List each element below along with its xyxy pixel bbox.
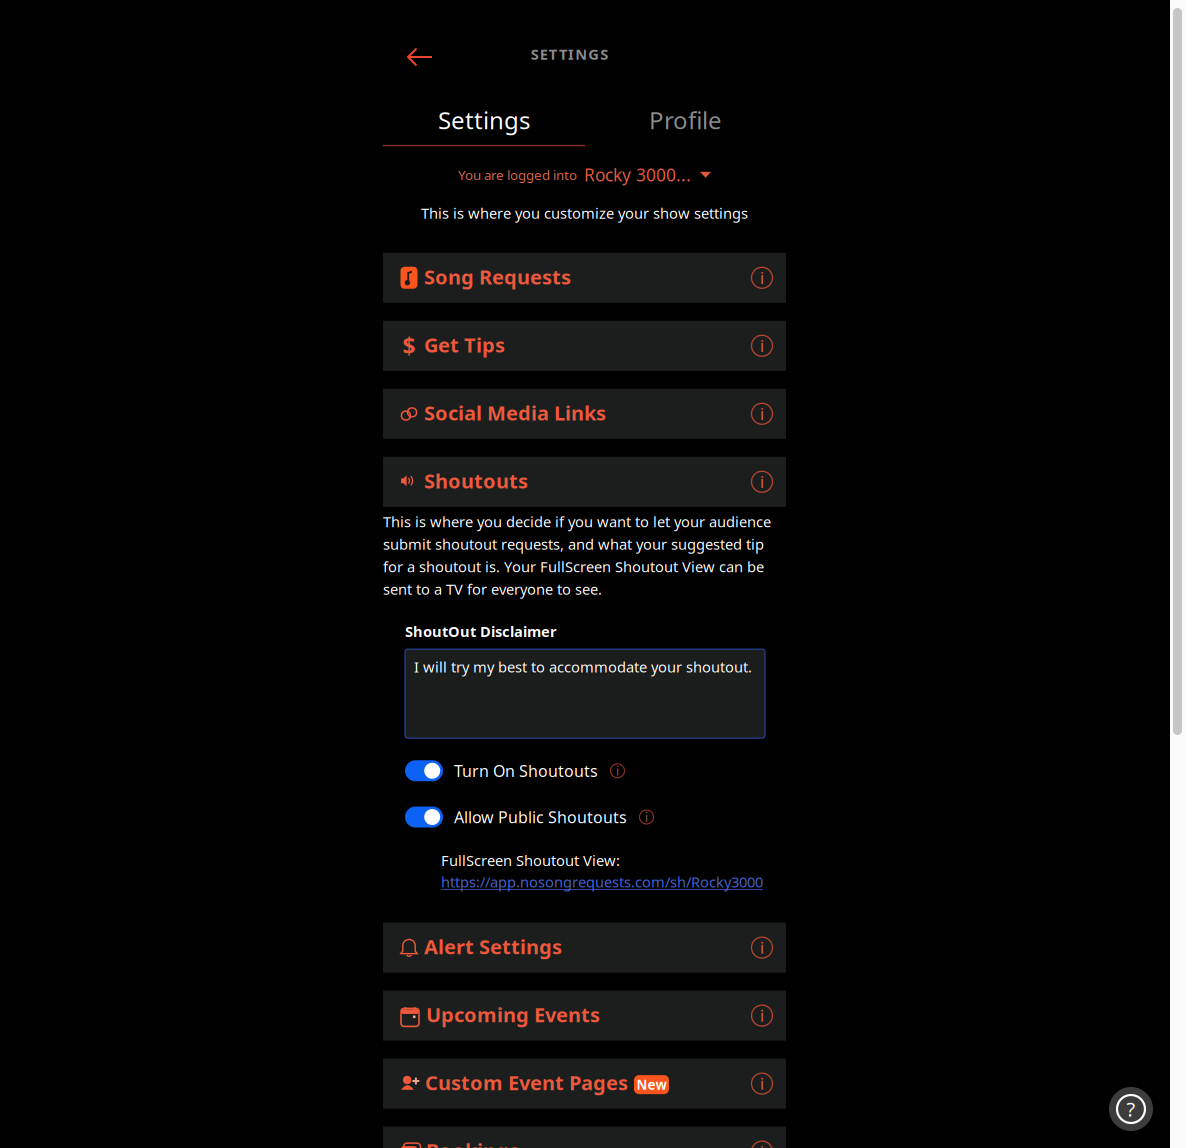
staticText: i bbox=[760, 1141, 764, 1148]
staticText: New bbox=[636, 1076, 666, 1093]
button[interactable]: Allow Public Shoutouts bbox=[405, 806, 443, 827]
staticText: Social Media Links bbox=[424, 399, 606, 426]
staticText: ShoutOut Disclaimer bbox=[405, 622, 557, 641]
staticText: i bbox=[760, 1005, 764, 1026]
staticText: Bookings bbox=[426, 1137, 519, 1148]
button[interactable]: Alert Settings bbox=[383, 923, 786, 973]
staticText: Upcoming Events bbox=[426, 1001, 600, 1028]
staticText: This is where you customize your show se… bbox=[421, 203, 748, 223]
staticText: i bbox=[760, 267, 764, 288]
staticText: Settings bbox=[438, 104, 530, 136]
button[interactable]: Song Requests bbox=[383, 253, 786, 303]
button[interactable]: Back bbox=[398, 38, 442, 76]
button[interactable]: Turn On Shoutouts bbox=[405, 760, 443, 781]
staticText: i bbox=[760, 471, 764, 492]
staticText: https://app.nosongrequests.com/sh/Rocky3… bbox=[441, 872, 763, 892]
staticText: You are logged into bbox=[458, 166, 577, 184]
staticText: Song Requests bbox=[424, 263, 571, 290]
staticText: i bbox=[760, 335, 764, 356]
staticText: i bbox=[645, 809, 648, 825]
staticText: Allow Public Shoutouts bbox=[454, 806, 627, 828]
staticText: FullScreen Shoutout View: bbox=[441, 851, 620, 870]
button[interactable]: Custom Event Pages bbox=[383, 1059, 786, 1109]
staticText: Alert Settings bbox=[424, 933, 562, 960]
button[interactable]: Rocky 3000... bbox=[577, 163, 711, 186]
staticText: ? bbox=[1126, 1096, 1135, 1122]
button[interactable]: Bookings bbox=[383, 1127, 786, 1148]
staticText: i bbox=[616, 763, 619, 779]
staticText: i bbox=[760, 937, 764, 958]
button[interactable]: Upcoming Events bbox=[383, 991, 786, 1041]
button[interactable]: Settings bbox=[383, 104, 585, 146]
staticText: Rocky 3000... bbox=[584, 163, 691, 186]
staticText: SETTINGS bbox=[531, 44, 608, 64]
staticText: I will try my best to accommodate your s… bbox=[414, 657, 752, 677]
button[interactable]: Social Media Links bbox=[383, 389, 786, 439]
staticText: Profile bbox=[649, 104, 722, 136]
staticText: Get Tips bbox=[424, 331, 505, 358]
button[interactable]: Help bbox=[1109, 1087, 1153, 1131]
staticText: i bbox=[760, 1073, 764, 1094]
button[interactable]: Profile bbox=[585, 104, 786, 146]
staticText: Shoutouts bbox=[424, 467, 528, 494]
staticText: This is where you decide if you want to … bbox=[383, 512, 771, 599]
staticText: $ bbox=[402, 331, 415, 361]
staticText: Custom Event Pages bbox=[425, 1069, 628, 1096]
button[interactable]: https://app.nosongrequests.com/sh/Rocky3… bbox=[441, 872, 786, 892]
button[interactable]: Shoutouts bbox=[383, 457, 786, 507]
staticText: i bbox=[760, 403, 764, 424]
button[interactable]: $ bbox=[383, 321, 786, 371]
staticText: Turn On Shoutouts bbox=[454, 760, 598, 781]
